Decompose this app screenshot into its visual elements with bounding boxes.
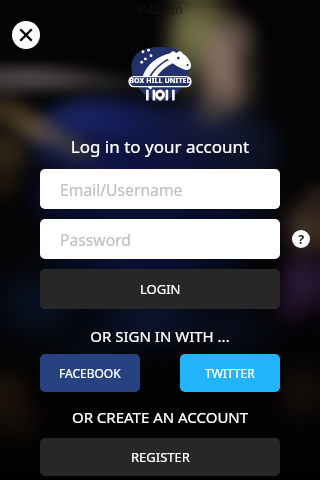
button[interactable]: LOGIN — [40, 269, 280, 309]
button[interactable]: REGISTER — [40, 438, 280, 476]
staticText: Password — [60, 229, 131, 250]
button[interactable]: Close — [12, 21, 40, 49]
button[interactable]: Password — [40, 219, 280, 259]
staticText: BOX HILL UNITED — [129, 76, 191, 86]
staticText: ? — [298, 230, 305, 248]
staticText: Email/Username — [60, 179, 183, 200]
staticText: TWITTER — [205, 365, 255, 381]
staticText: OR CREATE AN ACCOUNT — [0, 407, 320, 427]
staticText: REGISTER — [131, 448, 190, 466]
button[interactable]: Email/Username — [40, 169, 280, 209]
button[interactable]: TWITTER — [180, 354, 280, 392]
staticText: Log in to your account — [0, 135, 320, 158]
staticText: FACEBOOK — [59, 365, 121, 381]
staticText: LOGIN — [140, 280, 181, 298]
button[interactable]: FACEBOOK — [40, 354, 140, 392]
staticText: 8:42 pm — [137, 1, 183, 17]
staticText: OR SIGN IN WITH ... — [0, 326, 320, 346]
button[interactable]: Help — [292, 230, 310, 248]
